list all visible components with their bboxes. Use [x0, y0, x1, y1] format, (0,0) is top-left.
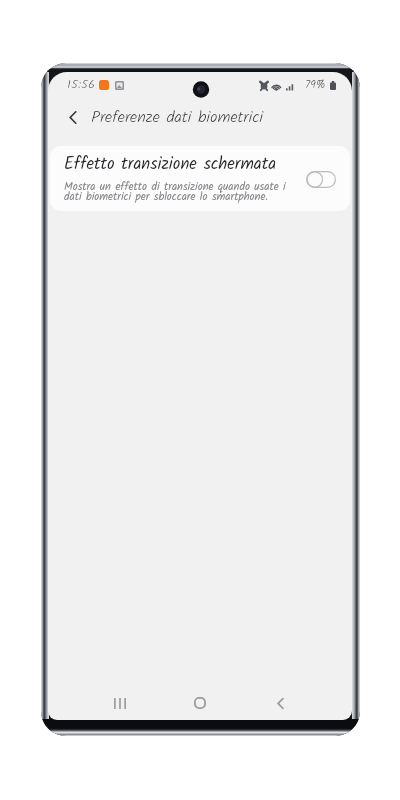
- staticText: 15:56: [67, 75, 95, 95]
- button[interactable]: Attiva effetto transizione schermata: [304, 168, 338, 190]
- button[interactable]: Indietro: [258, 686, 302, 720]
- staticText: Effetto transizione schermata: [64, 151, 277, 178]
- staticText: Mostra un effetto di transizione quando …: [64, 178, 293, 206]
- button[interactable]: Indietro: [62, 106, 84, 128]
- button[interactable]: Effetto transizione schermata: [50, 146, 350, 211]
- button[interactable]: Home: [178, 686, 222, 720]
- staticText: Preferenze dati biometrici: [91, 104, 263, 130]
- button[interactable]: App recenti: [98, 686, 142, 720]
- staticText: 79%: [305, 76, 326, 94]
